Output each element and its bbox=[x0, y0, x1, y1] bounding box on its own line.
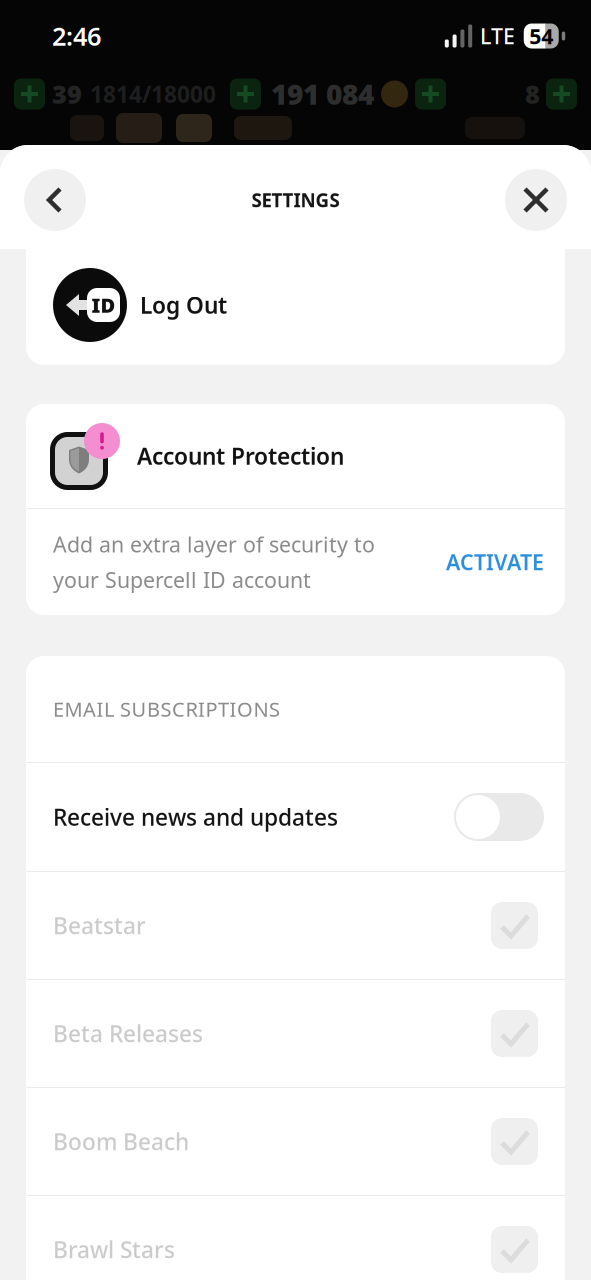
staticText: 39 bbox=[52, 77, 82, 111]
button[interactable]: Boom Beach bbox=[26, 1088, 565, 1195]
staticText: 1814/18000 bbox=[90, 79, 216, 109]
staticText: 54 bbox=[529, 22, 553, 50]
staticText: your Supercell ID account bbox=[53, 565, 311, 594]
staticText: 191 084 bbox=[271, 75, 374, 113]
staticText: 8 bbox=[525, 77, 540, 111]
button[interactable]: Close bbox=[505, 169, 567, 231]
staticText: Boom Beach bbox=[53, 1126, 189, 1156]
staticText: 2:46 bbox=[52, 19, 101, 53]
button[interactable]: Beatstar bbox=[26, 872, 565, 979]
staticText: Account Protection bbox=[137, 441, 344, 471]
staticText: Add an extra layer of security to bbox=[53, 530, 375, 558]
button[interactable]: Back bbox=[24, 169, 86, 231]
staticText: Beta Releases bbox=[53, 1018, 203, 1048]
staticText: ACTIVATE bbox=[446, 548, 544, 576]
button[interactable]: Beta Releases bbox=[26, 980, 565, 1087]
button[interactable]: ACTIVATE bbox=[446, 548, 544, 576]
staticText: Receive news and updates bbox=[53, 802, 338, 832]
staticText: EMAIL SUBSCRIPTIONS bbox=[53, 696, 280, 722]
staticText: SETTINGS bbox=[251, 188, 339, 212]
staticText: ID bbox=[91, 292, 115, 318]
staticText: Brawl Stars bbox=[53, 1234, 175, 1264]
staticText: Log Out bbox=[140, 290, 227, 320]
button[interactable]: Brawl Stars bbox=[26, 1196, 565, 1280]
staticText: Beatstar bbox=[53, 910, 146, 940]
staticText: LTE bbox=[480, 22, 515, 50]
